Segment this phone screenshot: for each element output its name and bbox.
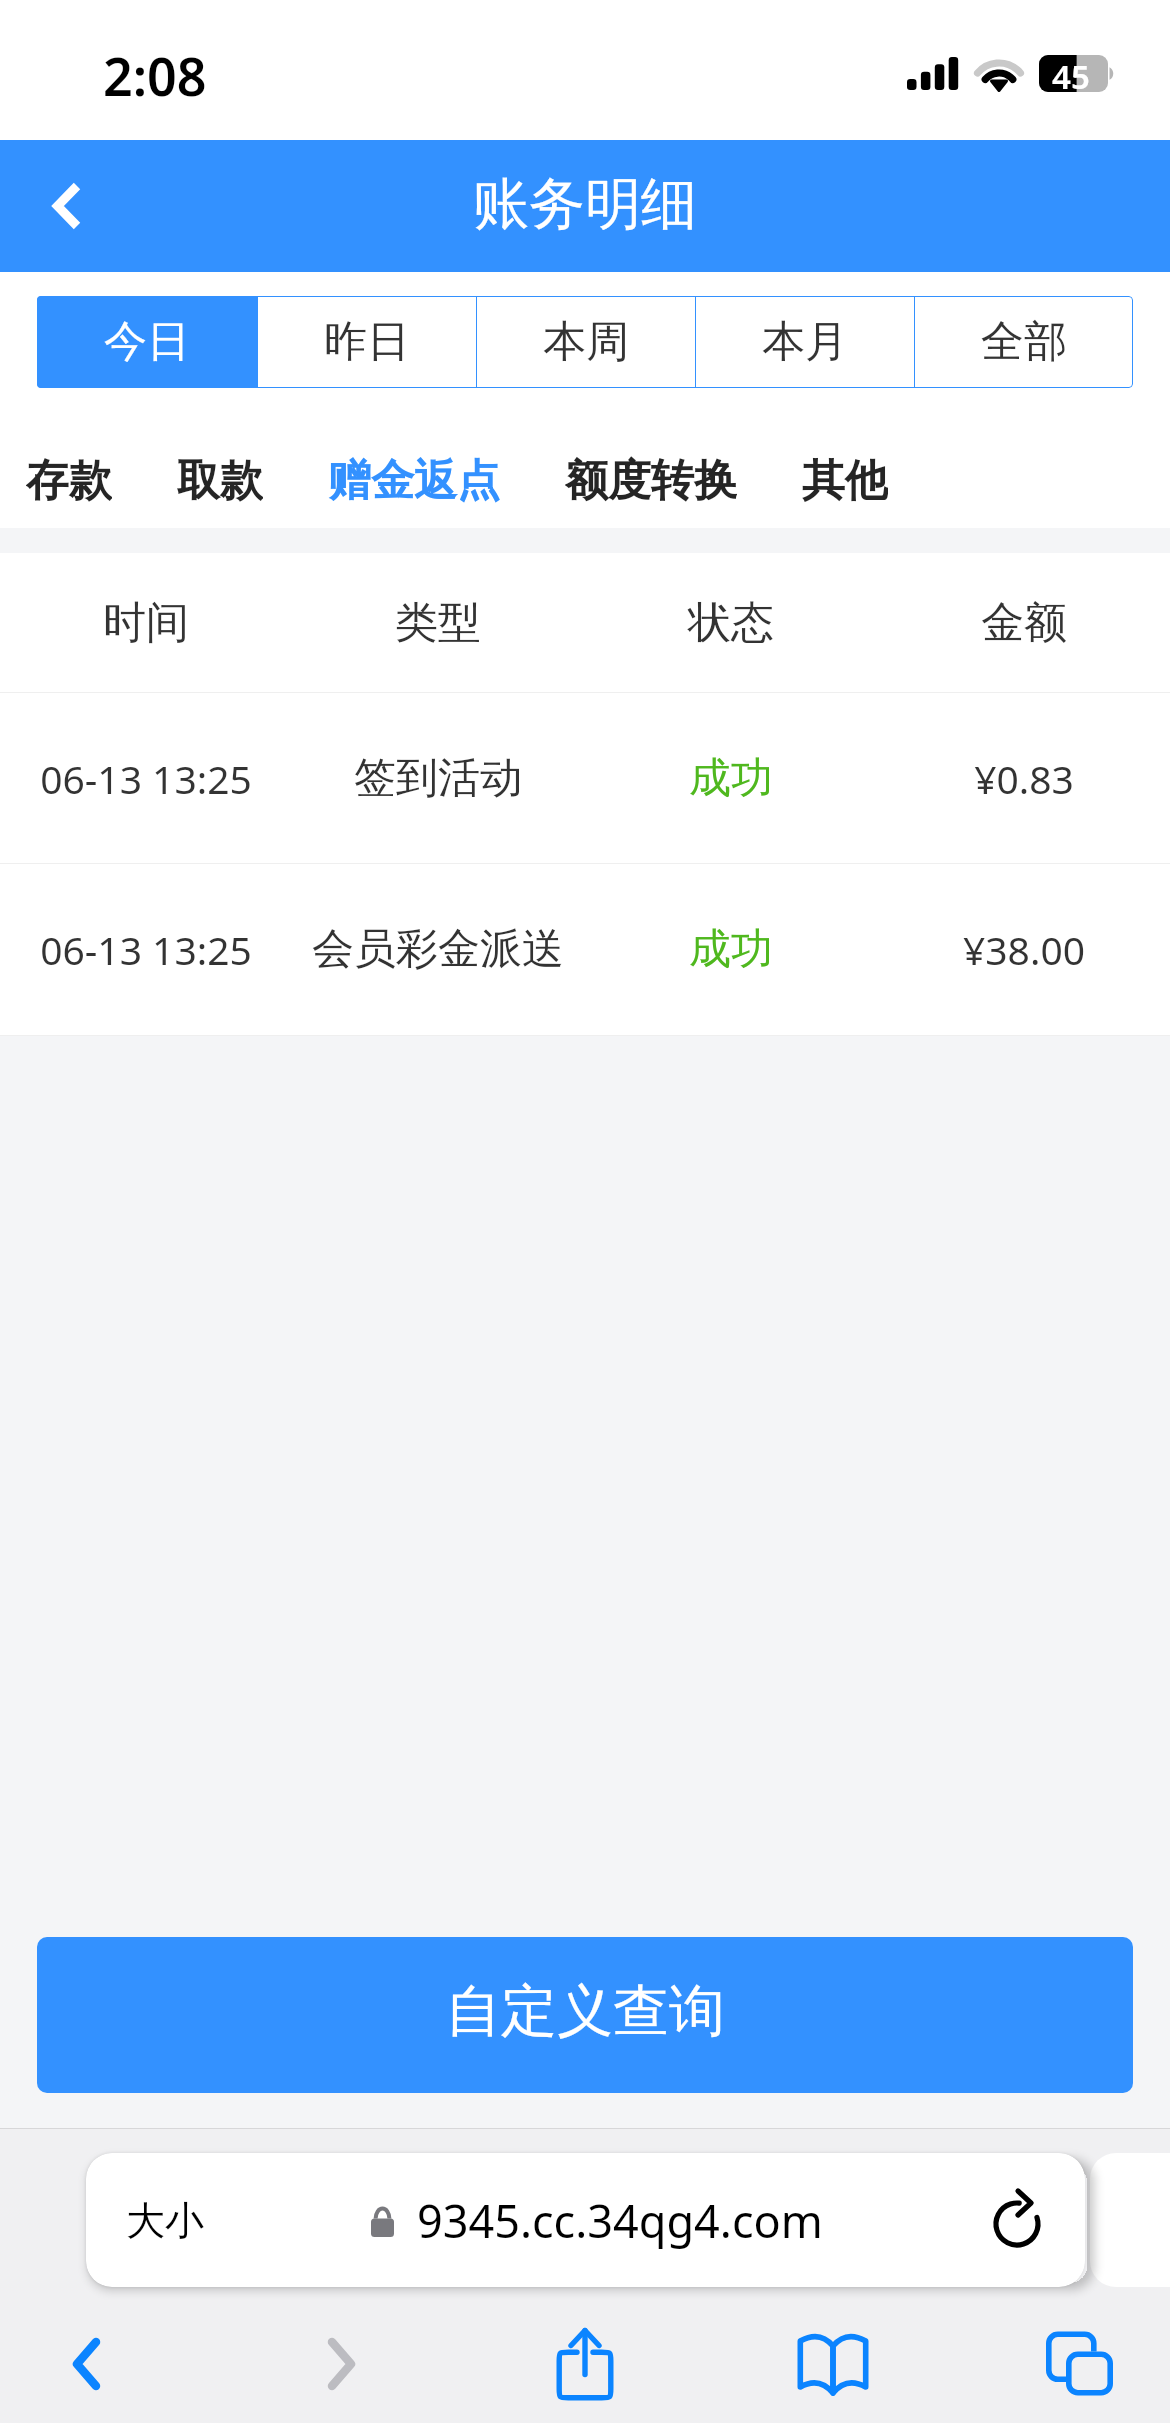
staticText: 签到活动 xyxy=(354,752,522,805)
staticText: 45 xyxy=(1052,54,1090,91)
button[interactable]: 大小 xyxy=(86,2153,1085,2287)
button[interactable]: 06-13 13:25 xyxy=(0,693,1170,863)
button[interactable]: 本周 xyxy=(476,296,695,388)
staticText: 2:08 xyxy=(103,40,207,111)
button[interactable]: 额度转换 xyxy=(565,454,737,506)
button[interactable]: 其他 xyxy=(802,454,888,506)
button[interactable]: 存款 xyxy=(26,454,112,506)
button[interactable]: 全部 xyxy=(914,296,1133,388)
staticText: 账务明细 xyxy=(473,169,697,240)
staticText: 其他 xyxy=(802,454,888,506)
button[interactable]: 本月 xyxy=(695,296,914,388)
button[interactable]: 赠金返点 xyxy=(328,454,500,506)
staticText: ¥0.83 xyxy=(974,752,1074,805)
button[interactable]: Back xyxy=(31,2306,141,2422)
staticText: 额度转换 xyxy=(565,454,737,506)
staticText: 06-13 13:25 xyxy=(40,923,252,976)
button[interactable]: 自定义查询 xyxy=(37,1937,1133,2093)
button[interactable]: Forward xyxy=(286,2306,396,2422)
button[interactable]: 取款 xyxy=(177,454,263,506)
button[interactable]: 今日 xyxy=(37,296,257,388)
staticText: 存款 xyxy=(26,454,112,506)
staticText: 自定义查询 xyxy=(445,1976,725,2047)
button[interactable]: Reload xyxy=(983,2185,1053,2255)
button[interactable]: Back xyxy=(26,166,106,246)
staticText: 昨日 xyxy=(324,315,410,369)
staticText: 全部 xyxy=(981,315,1067,369)
staticText: 时间 xyxy=(103,596,189,650)
staticText: 成功 xyxy=(689,752,773,805)
staticText: 金额 xyxy=(981,596,1067,650)
button[interactable]: 06-13 13:25 xyxy=(0,864,1170,1035)
staticText: 今日 xyxy=(104,315,190,369)
staticText: 本月 xyxy=(762,315,848,369)
staticText: 本周 xyxy=(543,315,629,369)
staticText: ¥38.00 xyxy=(963,923,1085,976)
staticText: 取款 xyxy=(177,454,263,506)
staticText: 9345.cc.34qg4.com xyxy=(417,2190,823,2251)
button[interactable]: Tabs xyxy=(1025,2306,1135,2422)
staticText: 会员彩金派送 xyxy=(312,923,564,976)
staticText: 类型 xyxy=(395,596,481,650)
staticText: 状态 xyxy=(688,596,774,650)
staticText: 06-13 13:25 xyxy=(40,752,252,805)
button[interactable]: 昨日 xyxy=(257,296,476,388)
staticText: 大小 xyxy=(126,2196,204,2245)
button[interactable]: Bookmarks xyxy=(778,2306,888,2422)
staticText: 赠金返点 xyxy=(328,454,500,506)
staticText: 成功 xyxy=(689,923,773,976)
button[interactable]: Share xyxy=(530,2306,640,2422)
